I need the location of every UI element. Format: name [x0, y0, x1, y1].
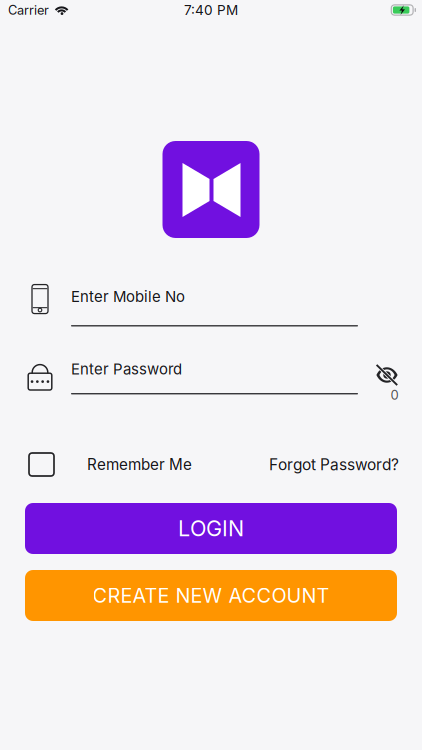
staticText: Enter Mobile No	[71, 288, 185, 306]
staticText: Enter Password	[71, 360, 182, 378]
button[interactable]: Forgot Password?	[269, 455, 399, 474]
staticText: 0	[390, 387, 398, 403]
button[interactable]: LOGIN	[25, 503, 397, 554]
button[interactable]: CREATE NEW ACCOUNT	[25, 570, 397, 621]
staticText: Carrier	[8, 2, 49, 18]
staticText: CREATE NEW ACCOUNT	[92, 583, 329, 607]
staticText: 7:40 PM	[184, 2, 238, 18]
staticText: LOGIN	[178, 515, 244, 541]
button[interactable]: Show password	[371, 360, 411, 404]
button[interactable]: Remember Me	[29, 453, 192, 476]
staticText: Remember Me	[87, 455, 192, 474]
staticText: Forgot Password?	[269, 455, 399, 474]
